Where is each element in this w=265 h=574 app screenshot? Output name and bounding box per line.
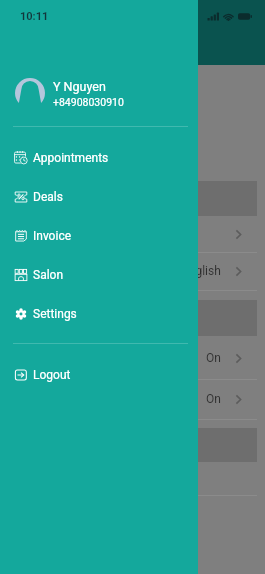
button[interactable]: Deals <box>0 178 198 216</box>
staticText: +84908030910 <box>53 96 124 108</box>
staticText: Logout <box>33 368 71 382</box>
button[interactable]: English <box>0 257 265 285</box>
staticText: Deals <box>33 190 63 204</box>
staticText: Invoice <box>33 229 72 243</box>
button[interactable] <box>0 220 265 248</box>
button[interactable]: Y Nguyen <box>0 78 198 108</box>
staticText: Appointments <box>33 151 109 165</box>
button[interactable]: Appointments <box>0 139 198 177</box>
staticText: English <box>182 264 221 278</box>
staticText: Salon <box>33 268 64 282</box>
button[interactable]: Invoice <box>0 217 198 255</box>
button[interactable]: On <box>0 385 265 413</box>
staticText: 10:11 <box>20 10 49 23</box>
button[interactable]: Settings <box>0 295 198 333</box>
button[interactable]: Logout <box>0 356 198 394</box>
staticText: On <box>206 351 221 365</box>
staticText: Settings <box>33 307 77 321</box>
staticText: Y Nguyen <box>53 79 106 94</box>
button[interactable]: Salon <box>0 256 198 294</box>
button[interactable]: On <box>0 344 265 372</box>
staticText: On <box>206 392 221 406</box>
